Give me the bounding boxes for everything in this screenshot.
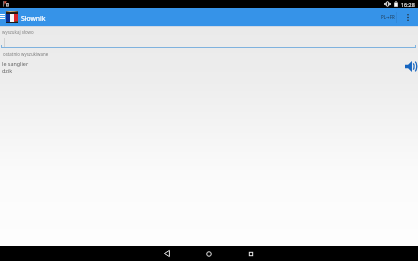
button[interactable]: More options — [398, 8, 417, 26]
staticText: le sanglier — [2, 60, 29, 67]
button[interactable]: Open navigation drawer — [0, 8, 6, 26]
button[interactable]: Home — [198, 246, 220, 261]
button[interactable]: Play pronunciation — [400, 59, 416, 75]
staticText: Słownik — [21, 14, 46, 23]
button[interactable]: PL→FR — [377, 8, 398, 26]
staticText: dzik — [2, 67, 13, 74]
staticText: 16:28 — [401, 1, 415, 8]
button[interactable]: Recent apps — [240, 246, 262, 261]
staticText: wyszukaj słowo — [2, 29, 34, 35]
staticText: PL→FR — [381, 14, 395, 20]
staticText: ostatnio wyszukiwane — [3, 51, 49, 57]
button[interactable]: Back — [156, 246, 178, 261]
button[interactable]: le sanglier — [0, 58, 418, 76]
